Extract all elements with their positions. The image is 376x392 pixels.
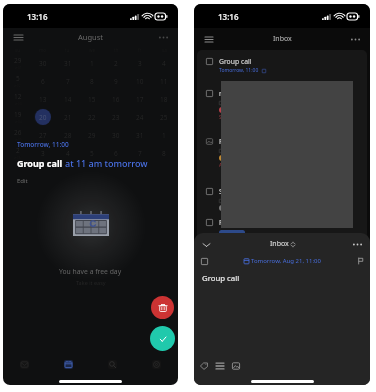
staticText: 14 — [64, 95, 72, 104]
staticText: 28 — [64, 131, 72, 140]
staticText: 7 — [66, 77, 70, 86]
button[interactable]: More options — [156, 30, 170, 44]
staticText: August — [78, 32, 103, 42]
staticText: Take it easy — [76, 279, 106, 286]
staticText: 5 — [16, 74, 20, 83]
button[interactable]: More options — [351, 238, 364, 251]
staticText: 31 — [136, 131, 144, 140]
staticText: 27 — [39, 131, 47, 140]
staticText: 23 — [112, 113, 120, 122]
staticText: 3 — [138, 59, 142, 68]
staticText: 7 — [138, 149, 142, 158]
staticText: 13:16 — [218, 11, 239, 22]
staticText: 26 — [14, 128, 22, 137]
staticText: 13:16 — [27, 11, 48, 22]
staticText: meeting notes — [219, 89, 266, 98]
staticText: Tomorrow, 11:00 — [219, 67, 259, 74]
staticText: 6 — [114, 149, 118, 158]
button[interactable]: Tomorrow, Aug 21, 11:00 — [201, 255, 363, 267]
button[interactable]: Plan trip — [206, 218, 360, 235]
staticText: 16 — [112, 95, 120, 104]
staticText: Inbox — [270, 239, 289, 249]
staticText: 4 — [162, 59, 166, 68]
staticText: 17 — [136, 95, 144, 104]
button[interactable]: Group call — [206, 57, 360, 74]
staticText: 19 — [14, 110, 22, 119]
button[interactable]: Collapse — [200, 238, 213, 251]
staticText: 2 — [114, 59, 118, 68]
staticText: 8 — [90, 77, 94, 86]
staticText: 8 — [162, 149, 166, 158]
staticText: Shopping list — [219, 187, 261, 196]
button[interactable]: Shopping list — [206, 187, 360, 211]
button[interactable]: Menu — [11, 30, 25, 44]
button[interactable]: Add image — [229, 359, 243, 373]
button[interactable]: Pay electric bill — [206, 137, 360, 168]
staticText: Inbox — [273, 34, 292, 44]
staticText: 22 — [88, 113, 96, 122]
staticText: 18 — [160, 95, 168, 104]
staticText: 24 — [136, 113, 144, 122]
staticText: 15 — [88, 95, 96, 104]
staticText: 2 — [16, 146, 20, 155]
staticText: 3 — [41, 149, 45, 158]
staticText: 30 — [112, 131, 120, 140]
button[interactable]: meeting notes — [206, 89, 360, 120]
staticText: 6 — [41, 77, 45, 86]
staticText: 30 — [39, 59, 47, 68]
button[interactable]: Search — [90, 353, 134, 375]
button[interactable]: Delete — [151, 296, 174, 319]
staticText: 12 — [14, 92, 22, 101]
staticText: Sync up — [219, 114, 236, 120]
staticText: Tomorrow, 11:00 — [17, 140, 69, 149]
staticText: Group call — [17, 157, 65, 169]
button[interactable]: Confirm — [150, 326, 175, 351]
staticText: Group call — [219, 57, 252, 66]
button[interactable]: Edit — [17, 177, 28, 185]
staticText: at 11 am tomorrow — [65, 157, 148, 169]
staticText: 13 — [39, 95, 47, 104]
button[interactable]: Menu — [202, 32, 216, 46]
button[interactable]: Checklist — [213, 359, 227, 373]
staticText: Tomorrow, Aug 21, 11:00 — [251, 257, 321, 265]
button[interactable]: Inbox — [3, 353, 46, 375]
staticText: Pay electric bill — [219, 137, 267, 146]
staticText: Group call — [202, 273, 240, 284]
staticText: Edit — [17, 177, 28, 185]
button[interactable]: Tag — [197, 359, 211, 373]
staticText: Auto — [219, 162, 230, 168]
staticText: 29 — [14, 56, 22, 65]
button[interactable]: More options — [348, 32, 362, 46]
staticText: 20 — [39, 113, 47, 122]
staticText: 11 — [160, 77, 168, 86]
staticText: 25 — [160, 113, 168, 122]
staticText: 9 — [114, 77, 118, 86]
staticText: 21 — [64, 113, 72, 122]
staticText: 10 — [136, 77, 144, 86]
staticText: 31 — [64, 59, 72, 68]
staticText: 4 — [66, 149, 70, 158]
staticText: Plan trip — [219, 218, 246, 227]
button[interactable]: Calendar — [46, 353, 90, 375]
staticText: 29 — [88, 131, 96, 140]
staticText: You have a free day — [59, 267, 122, 276]
staticText: 5 — [90, 149, 94, 158]
